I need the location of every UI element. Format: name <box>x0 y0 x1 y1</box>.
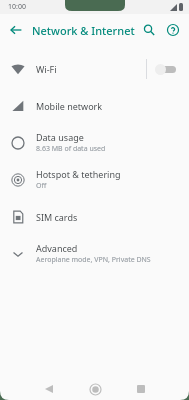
button[interactable]: Mobile network <box>0 87 189 124</box>
button[interactable]: Back <box>6 20 26 40</box>
button[interactable]: Back <box>37 378 61 400</box>
staticText: Advanced <box>36 242 78 254</box>
button[interactable]: Hotspot & tethering <box>0 161 189 198</box>
staticText: Wi-Fi <box>36 63 57 75</box>
staticText: Off <box>36 181 47 191</box>
staticText: Hotspot & tethering <box>36 168 121 180</box>
button[interactable]: SIM cards <box>0 198 189 235</box>
button[interactable]: Search <box>139 20 159 40</box>
staticText: Network & Internet <box>32 23 135 38</box>
button[interactable]: Data usage <box>0 124 189 161</box>
staticText: Data usage <box>36 131 84 143</box>
button[interactable]: Wi-Fi <box>0 50 189 87</box>
staticText: Aeroplane mode, VPN, Private DNS <box>36 255 151 265</box>
staticText: 10:00 <box>8 2 26 12</box>
button[interactable]: Recents <box>129 378 153 400</box>
button[interactable]: Advanced <box>0 235 189 272</box>
staticText: 8.63 MB of data used <box>36 144 106 154</box>
button[interactable]: Help <box>163 20 183 40</box>
staticText: SIM cards <box>36 211 78 223</box>
staticText: Mobile network <box>36 100 103 112</box>
button[interactable]: Toggle Wi-Fi <box>155 62 179 76</box>
button[interactable]: Home <box>83 378 107 400</box>
